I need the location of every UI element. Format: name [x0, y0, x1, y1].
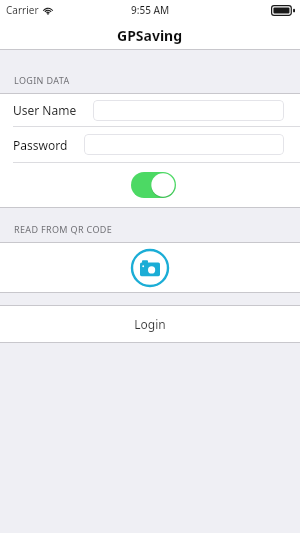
button[interactable]: User Name — [0, 94, 300, 126]
button[interactable]: Password — [0, 127, 300, 162]
button[interactable]: Scan QR code with camera — [130, 248, 170, 288]
button[interactable]: Login — [0, 306, 300, 342]
staticText: Carrier — [6, 3, 39, 17]
staticText: GPSaving — [117, 26, 183, 45]
staticText: Password — [13, 137, 68, 153]
staticText: User Name — [13, 102, 77, 118]
staticText: Login — [134, 316, 166, 332]
staticText: 9:55 AM — [131, 3, 170, 17]
staticText: READ FROM QR CODE — [14, 223, 113, 235]
button[interactable]: Remember me toggle — [131, 172, 176, 198]
staticText: LOGIN DATA — [14, 74, 70, 86]
